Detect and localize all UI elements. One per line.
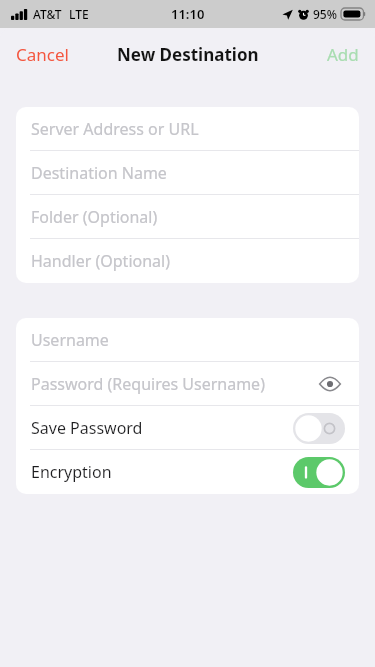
button[interactable]: Server Address or URL — [16, 107, 359, 151]
button[interactable]: Destination Name — [16, 151, 359, 195]
staticText: Server Address or URL — [31, 118, 345, 140]
staticText: Destination Name — [31, 162, 345, 184]
staticText: 11:10 — [171, 5, 205, 23]
staticText: Encryption — [31, 461, 112, 483]
staticText: Password (Requires Username) — [31, 373, 315, 395]
button[interactable]: Username — [16, 318, 359, 362]
button[interactable]: Cancel — [0, 35, 85, 74]
staticText: Add — [327, 43, 359, 66]
staticText: Handler (Optional) — [31, 250, 345, 272]
button[interactable]: Folder (Optional) — [16, 195, 359, 239]
staticText: 95% — [313, 6, 337, 22]
staticText: Save Password — [31, 417, 143, 439]
staticText: LTE — [69, 6, 89, 22]
staticText: Username — [31, 329, 345, 351]
button[interactable]: Handler (Optional) — [16, 239, 359, 283]
button[interactable]: Show password — [315, 369, 345, 399]
button[interactable]: Password (Requires Username) — [16, 362, 359, 406]
button[interactable]: Add — [311, 35, 375, 74]
button[interactable]: Save Password — [16, 406, 359, 450]
staticText: Cancel — [16, 43, 69, 66]
button[interactable]: Encryption — [16, 450, 359, 494]
staticText: Folder (Optional) — [31, 206, 345, 228]
staticText: AT&T — [33, 6, 62, 22]
staticText: New Destination — [117, 43, 259, 66]
